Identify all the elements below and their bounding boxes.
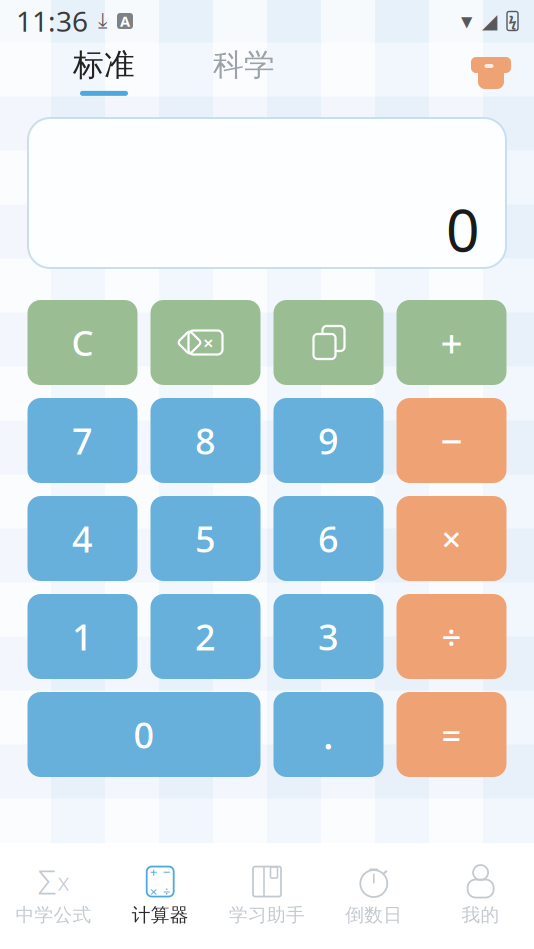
- staticText: 1: [72, 613, 93, 660]
- staticText: 11:36: [16, 2, 88, 40]
- staticText: 6: [318, 515, 339, 562]
- staticText: ×: [150, 882, 158, 900]
- staticText: ▾: [461, 8, 472, 34]
- button[interactable]: ×: [396, 496, 506, 581]
- staticText: ◢: [482, 10, 497, 32]
- staticText: ×: [203, 330, 214, 355]
- button[interactable]: 倒数日: [320, 858, 427, 934]
- staticText: 4: [72, 515, 93, 562]
- button[interactable]: 8: [150, 398, 260, 483]
- staticText: +: [440, 317, 462, 368]
- button[interactable]: 1: [27, 594, 137, 679]
- button[interactable]: Theme: [466, 46, 516, 96]
- button[interactable]: 标准: [34, 42, 174, 100]
- button[interactable]: C: [27, 300, 137, 385]
- staticText: C: [71, 319, 93, 365]
- staticText: 计算器: [132, 903, 189, 926]
- staticText: +: [150, 863, 158, 880]
- button[interactable]: 2: [150, 594, 260, 679]
- staticText: 8: [195, 417, 216, 464]
- button[interactable]: 4: [27, 496, 137, 581]
- staticText: =: [441, 711, 461, 757]
- button[interactable]: 3: [273, 594, 383, 679]
- staticText: ÷: [441, 613, 461, 659]
- staticText: 5: [195, 515, 216, 562]
- button[interactable]: +: [396, 300, 506, 385]
- staticText: −: [440, 415, 462, 466]
- staticText: 倒数日: [345, 903, 402, 926]
- staticText: Σ: [37, 859, 56, 904]
- staticText: 3: [318, 613, 339, 660]
- staticText: 0: [133, 711, 154, 758]
- staticText: 7: [72, 417, 93, 464]
- staticText: x: [57, 866, 69, 897]
- button[interactable]: 7: [27, 398, 137, 483]
- button[interactable]: −: [396, 398, 506, 483]
- staticText: ϟ: [508, 11, 516, 31]
- button[interactable]: 0: [27, 692, 260, 777]
- staticText: 学习助手: [229, 903, 305, 926]
- staticText: .: [323, 709, 334, 760]
- staticText: 0: [446, 190, 480, 268]
- staticText: A: [120, 11, 130, 31]
- button[interactable]: 9: [273, 398, 383, 483]
- button[interactable]: ÷: [396, 594, 506, 679]
- staticText: 科学: [213, 46, 275, 84]
- button[interactable]: 学习助手: [214, 858, 320, 934]
- button[interactable]: Backspace: [150, 300, 260, 385]
- staticText: −: [163, 863, 171, 880]
- button[interactable]: 5: [150, 496, 260, 581]
- button[interactable]: 科学: [174, 42, 314, 100]
- button[interactable]: Copy: [273, 300, 383, 385]
- button[interactable]: =: [396, 692, 506, 777]
- staticText: 9: [318, 417, 339, 464]
- button[interactable]: Σ: [0, 858, 107, 934]
- staticText: 中学公式: [15, 903, 91, 926]
- button[interactable]: .: [273, 692, 383, 777]
- button[interactable]: 我的: [427, 858, 534, 934]
- staticText: 2: [195, 613, 216, 660]
- staticText: ⤓: [98, 11, 107, 31]
- staticText: 我的: [462, 903, 500, 926]
- button[interactable]: +: [107, 858, 214, 934]
- staticText: 标准: [73, 46, 135, 84]
- staticText: ×: [441, 515, 461, 561]
- button[interactable]: 6: [273, 496, 383, 581]
- staticText: ÷: [163, 882, 171, 900]
